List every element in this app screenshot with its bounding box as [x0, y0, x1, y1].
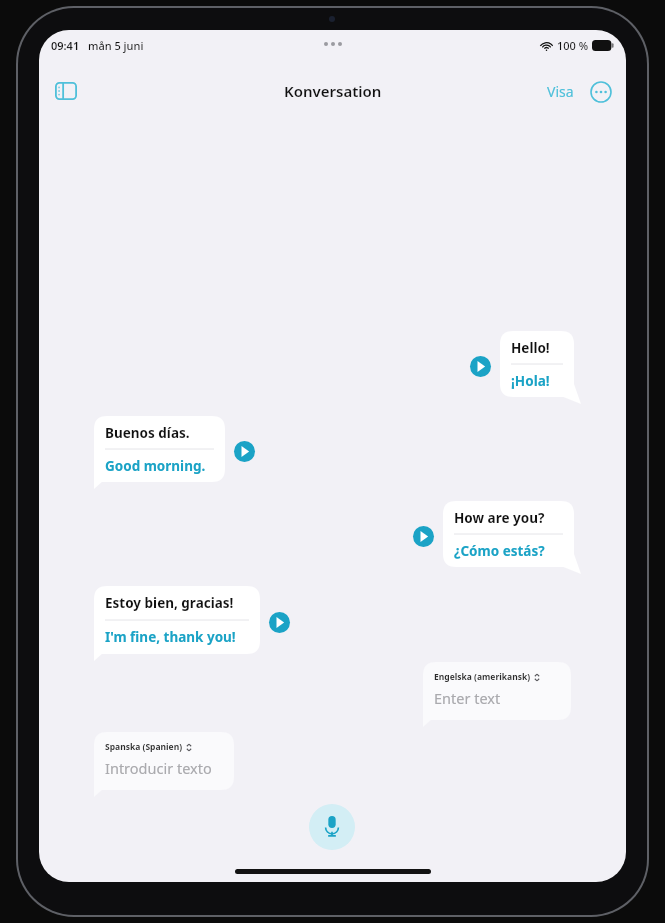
staticText: Estoy bien, gracias!: [105, 594, 234, 612]
staticText: Visa: [547, 82, 574, 101]
staticText: Spanska (Spanien): [105, 741, 183, 753]
button[interactable]: Engelska (amerikansk): [423, 662, 571, 728]
button[interactable]: Hello!: [500, 331, 574, 406]
staticText: Konversation: [284, 81, 382, 101]
staticText: How are you?: [454, 509, 545, 527]
button[interactable]: Spela upp: [269, 612, 290, 633]
staticText: Good morning.: [105, 457, 206, 475]
button[interactable]: Fler alternativ: [588, 79, 614, 105]
staticText: 100 %: [557, 38, 589, 53]
staticText: mån 5 juni: [88, 38, 144, 53]
button[interactable]: Visa sidofält: [49, 74, 83, 108]
staticText: Enter text: [434, 688, 501, 708]
button[interactable]: Mikrofon: [309, 804, 355, 850]
staticText: 09:41: [51, 38, 80, 53]
button[interactable]: Spanska (Spanien): [94, 732, 234, 798]
staticText: Introducir texto: [105, 758, 212, 778]
button[interactable]: Spela upp: [470, 356, 491, 377]
button[interactable]: Buenos días.: [94, 416, 225, 491]
staticText: ¡Hola!: [511, 372, 550, 390]
button[interactable]: Estoy bien, gracias!: [94, 586, 260, 663]
staticText: Engelska (amerikansk): [434, 671, 531, 683]
button[interactable]: Spela upp: [234, 441, 255, 462]
staticText: Buenos días.: [105, 424, 190, 442]
staticText: ¿Cómo estás?: [454, 542, 545, 560]
button[interactable]: Spela upp: [413, 526, 434, 547]
button[interactable]: How are you?: [443, 501, 574, 576]
staticText: Hello!: [511, 339, 550, 357]
staticText: I'm fine, thank you!: [105, 628, 236, 646]
button[interactable]: Visa: [543, 78, 578, 105]
